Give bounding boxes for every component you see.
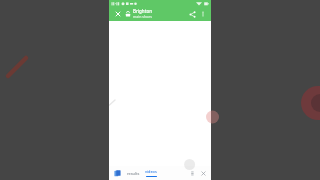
button[interactable]: Documents (112, 168, 123, 179)
staticText: results (127, 171, 140, 176)
staticText: main shoes (133, 14, 152, 19)
button[interactable]: results (127, 167, 140, 179)
button[interactable]: Close (112, 8, 123, 19)
button[interactable]: videos (145, 167, 157, 179)
button[interactable]: List (188, 169, 197, 178)
button[interactable]: Brighton (133, 8, 186, 19)
button[interactable]: Share (186, 8, 198, 20)
button[interactable]: Settings (199, 169, 208, 178)
button[interactable]: More options (198, 9, 208, 19)
staticText: videos (145, 169, 157, 174)
staticText: Brighton (133, 8, 152, 14)
